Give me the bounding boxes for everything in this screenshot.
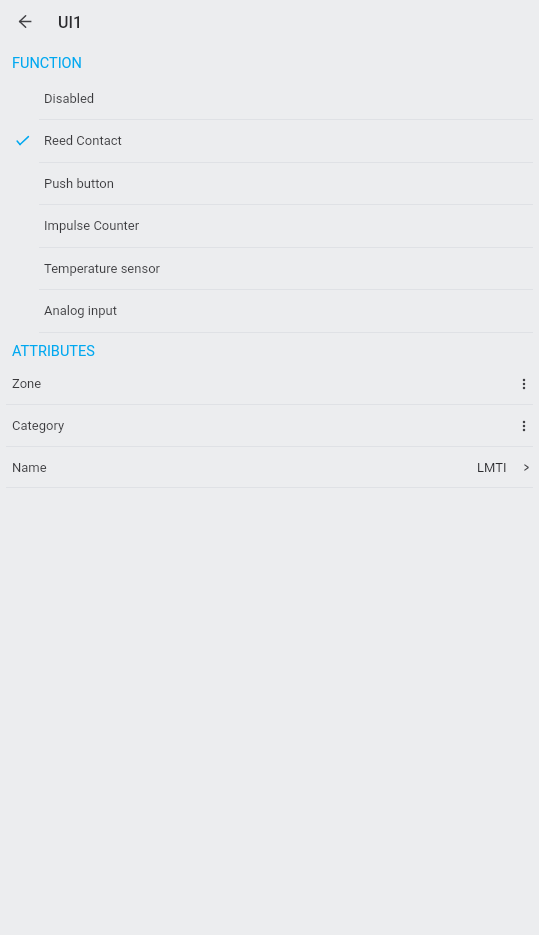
button[interactable]: Name — [0, 447, 539, 487]
staticText: Disabled — [44, 91, 95, 106]
staticText: Reed Contact — [44, 133, 122, 148]
staticText: Category — [12, 418, 65, 433]
button[interactable]: Analog input — [0, 289, 539, 332]
button[interactable]: Temperature sensor — [0, 247, 539, 289]
staticText: Zone — [12, 376, 42, 391]
button[interactable]: Disabled — [0, 77, 539, 119]
button[interactable]: Category — [0, 405, 539, 446]
button[interactable]: Navigate up — [4, 0, 46, 42]
staticText: UI1 — [58, 13, 83, 32]
button[interactable]: Zone — [0, 363, 539, 404]
staticText: LMTI — [477, 460, 507, 475]
button[interactable]: More options — [509, 369, 539, 399]
button[interactable]: More options — [509, 411, 539, 441]
staticText: Analog input — [44, 303, 117, 318]
staticText: FUNCTION — [12, 55, 82, 72]
staticText: Push button — [44, 176, 114, 191]
button[interactable]: Impulse Counter — [0, 204, 539, 247]
staticText: Temperature sensor — [44, 261, 160, 276]
button[interactable]: Reed Contact — [0, 119, 539, 162]
staticText: Impulse Counter — [44, 218, 140, 233]
staticText: ATTRIBUTES — [12, 343, 95, 360]
staticText: Name — [12, 460, 47, 475]
button[interactable]: Push button — [0, 162, 539, 204]
